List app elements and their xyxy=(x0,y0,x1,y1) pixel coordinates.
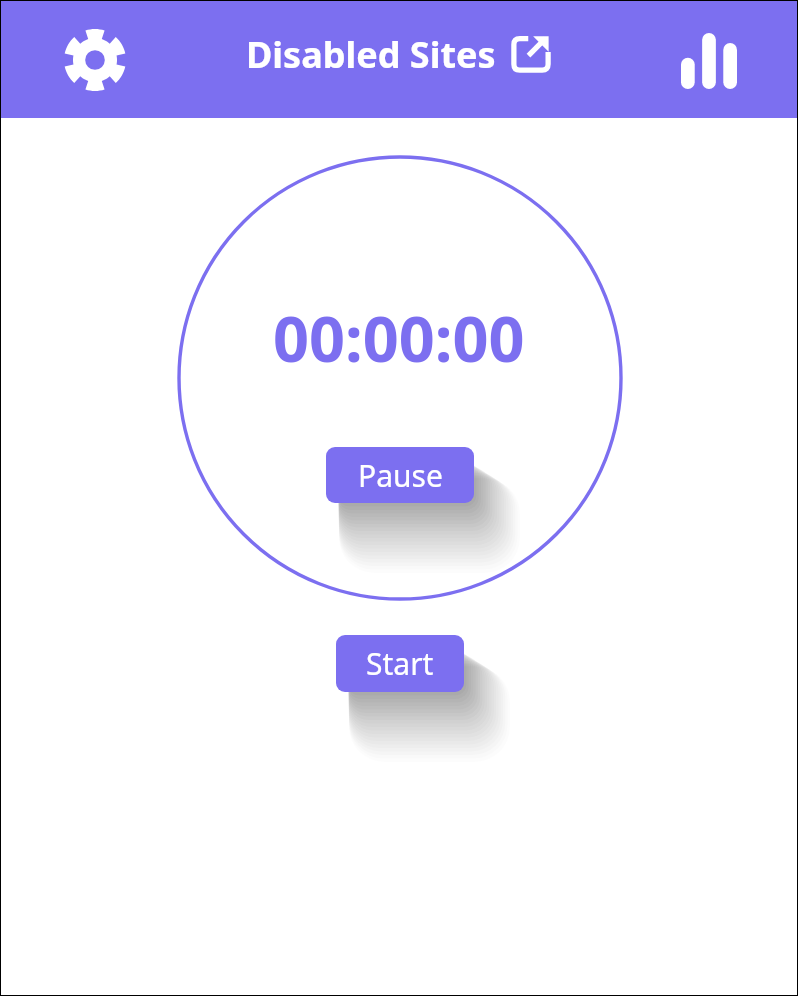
button[interactable]: Disabled Sites xyxy=(246,30,552,79)
staticText: 00:00:00 xyxy=(273,295,525,381)
button[interactable]: Pause xyxy=(326,447,474,503)
staticText: Pause xyxy=(358,455,443,496)
staticText: Disabled Sites xyxy=(246,30,496,79)
button[interactable]: Statistics xyxy=(672,24,746,98)
button[interactable]: Settings xyxy=(62,27,128,93)
staticText: Start xyxy=(366,643,434,684)
button[interactable]: Start xyxy=(336,635,464,692)
